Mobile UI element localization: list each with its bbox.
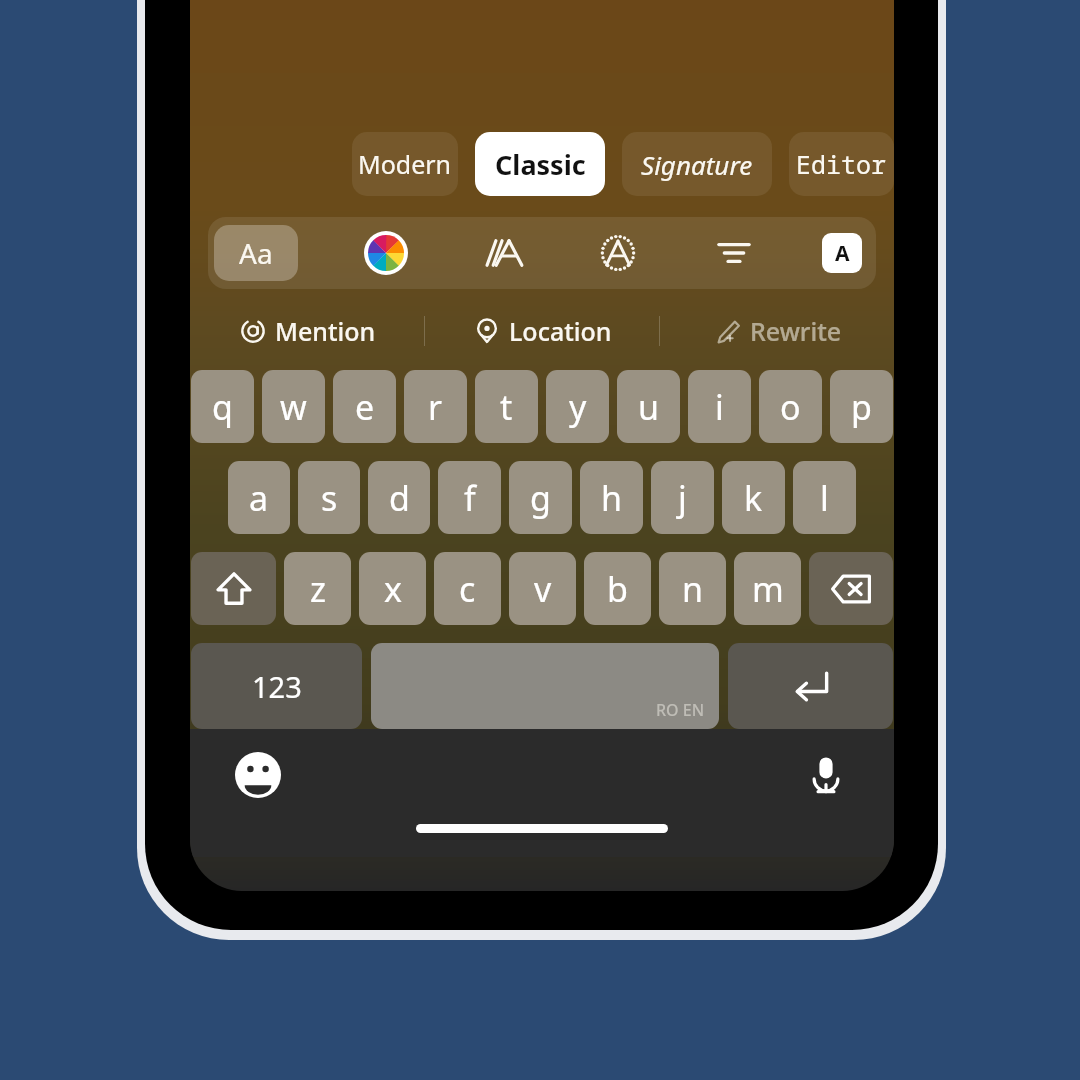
staticText: m <box>752 566 784 612</box>
button[interactable]: n <box>659 552 726 625</box>
staticText: f <box>464 475 476 521</box>
button[interactable]: a <box>228 461 290 534</box>
button[interactable]: i <box>688 370 751 443</box>
button[interactable]: Backspace <box>809 552 893 625</box>
button[interactable]: Editor <box>789 132 894 196</box>
button[interactable]: d <box>368 461 430 534</box>
staticText: A <box>835 239 850 268</box>
button[interactable]: Rewrite <box>660 305 894 357</box>
button[interactable]: u <box>617 370 680 443</box>
button[interactable]: Emoji <box>230 747 286 803</box>
button[interactable]: Space <box>371 643 719 729</box>
staticText: i <box>715 384 724 430</box>
button[interactable]: t <box>475 370 538 443</box>
button[interactable]: e <box>333 370 396 443</box>
button[interactable]: z <box>284 552 351 625</box>
staticText: e <box>355 384 375 430</box>
button[interactable]: Location <box>425 305 659 357</box>
button[interactable]: Shift <box>191 552 276 625</box>
button[interactable]: h <box>580 461 643 534</box>
staticText: h <box>601 475 623 521</box>
button[interactable]: Text color <box>358 225 414 281</box>
staticText: c <box>459 566 476 612</box>
button[interactable]: Classic <box>475 132 605 196</box>
button[interactable]: q <box>191 370 254 443</box>
staticText: p <box>851 384 872 430</box>
button[interactable]: o <box>759 370 822 443</box>
staticText: 123 <box>252 667 302 706</box>
staticText: Aa <box>239 234 273 272</box>
button[interactable]: l <box>793 461 856 534</box>
staticText: d <box>389 475 410 521</box>
button[interactable]: Modern <box>352 132 458 196</box>
button[interactable]: p <box>830 370 893 443</box>
staticText: Mention <box>275 314 376 348</box>
button[interactable]: w <box>262 370 325 443</box>
staticText: q <box>212 384 233 430</box>
staticText: t <box>500 384 513 430</box>
staticText: y <box>569 384 587 430</box>
button[interactable]: g <box>509 461 572 534</box>
staticText: b <box>607 566 628 612</box>
staticText: RO EN <box>656 699 705 721</box>
staticText: x <box>384 566 402 612</box>
button[interactable]: v <box>509 552 576 625</box>
button[interactable]: r <box>404 370 467 443</box>
button[interactable]: Outline text <box>590 225 646 281</box>
staticText: j <box>678 475 687 521</box>
button[interactable]: Text effects <box>474 225 530 281</box>
staticText: Classic <box>495 146 586 183</box>
staticText: v <box>534 566 552 612</box>
staticText: u <box>638 384 660 430</box>
staticText: n <box>682 566 704 612</box>
staticText: o <box>780 384 801 430</box>
button[interactable]: Aa <box>214 225 298 281</box>
staticText: w <box>280 384 307 430</box>
staticText: Signature <box>641 147 753 182</box>
button[interactable]: k <box>722 461 785 534</box>
staticText: g <box>530 475 551 521</box>
button[interactable]: b <box>584 552 651 625</box>
button[interactable]: 123 <box>191 643 362 729</box>
staticText: r <box>428 384 443 430</box>
button[interactable]: Mention <box>190 305 424 357</box>
staticText: Location <box>509 314 612 348</box>
button[interactable]: x <box>359 552 426 625</box>
button[interactable]: f <box>438 461 501 534</box>
button[interactable]: Alignment <box>706 225 762 281</box>
staticText: l <box>820 475 829 521</box>
button[interactable]: Voice input <box>798 747 854 803</box>
staticText: s <box>321 475 338 521</box>
button[interactable]: Signature <box>622 132 772 196</box>
staticText: Modern <box>358 147 452 181</box>
staticText: a <box>249 475 269 521</box>
button[interactable]: j <box>651 461 714 534</box>
button[interactable]: Enter <box>728 643 893 729</box>
staticText: k <box>744 475 763 521</box>
staticText: z <box>310 566 326 612</box>
button[interactable]: c <box>434 552 501 625</box>
staticText: Rewrite <box>750 314 842 348</box>
button[interactable]: s <box>298 461 360 534</box>
button[interactable]: y <box>546 370 609 443</box>
button[interactable]: Text background <box>822 233 862 273</box>
staticText: Editor <box>796 147 887 181</box>
button[interactable]: m <box>734 552 801 625</box>
